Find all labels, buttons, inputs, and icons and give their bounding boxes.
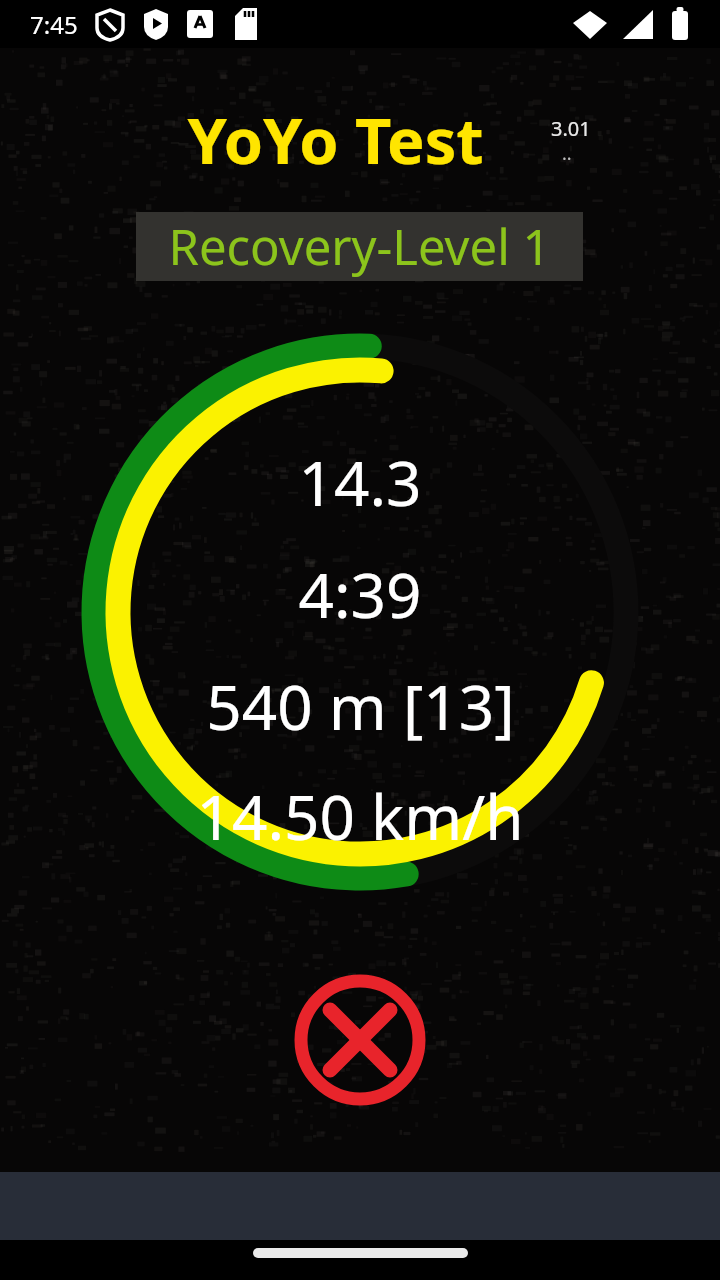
staticText: 540 m [13] <box>206 664 515 748</box>
button[interactable]: Stop test <box>292 972 428 1108</box>
staticText: YoYo Test <box>187 97 484 183</box>
staticText: 7:45 <box>30 8 78 41</box>
staticText: 3.01 <box>551 115 591 142</box>
staticText: 4:39 <box>298 552 422 636</box>
staticText: 14.3 <box>298 440 422 524</box>
staticText: .. <box>562 141 572 166</box>
button[interactable]: Recovery-Level 1 <box>136 212 583 281</box>
staticText: 14.50 km/h <box>196 774 524 858</box>
staticText: Recovery-Level 1 <box>168 213 551 280</box>
